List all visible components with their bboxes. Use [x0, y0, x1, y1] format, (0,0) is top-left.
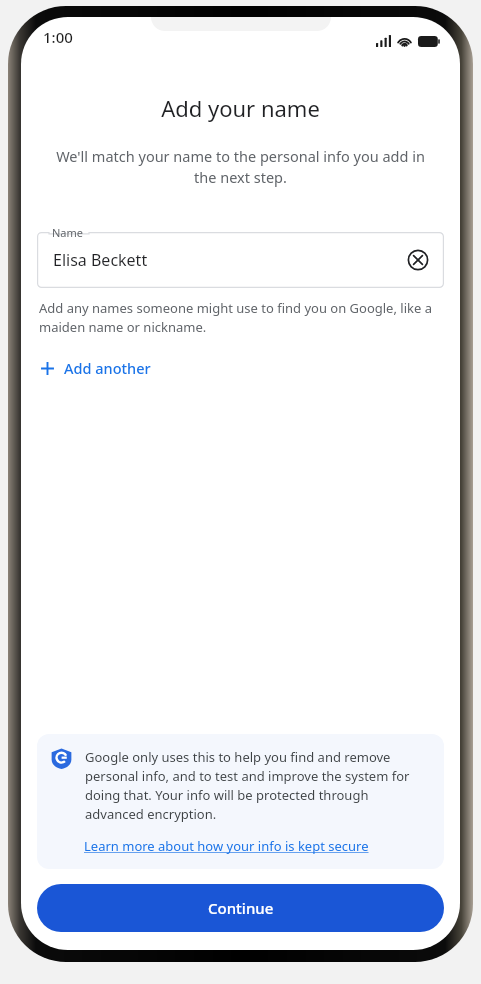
button[interactable]: Learn more about how your info is kept s… — [84, 837, 369, 855]
staticText: Add another — [64, 358, 151, 378]
button[interactable]: Clear name — [404, 246, 432, 274]
staticText: Add your name — [21, 93, 460, 123]
staticText: Continue — [208, 898, 274, 918]
staticText: We'll match your name to the personal in… — [47, 146, 434, 188]
staticText: Name — [52, 225, 84, 240]
staticText: Elisa Beckett — [53, 249, 148, 271]
staticText: 1:00 — [43, 27, 73, 47]
button[interactable]: Name — [37, 232, 444, 288]
button[interactable]: Add another — [35, 352, 155, 384]
staticText: Add any names someone might use to find … — [39, 299, 438, 336]
button[interactable]: Continue — [37, 884, 444, 932]
staticText: Google only uses this to help you find a… — [85, 748, 428, 823]
